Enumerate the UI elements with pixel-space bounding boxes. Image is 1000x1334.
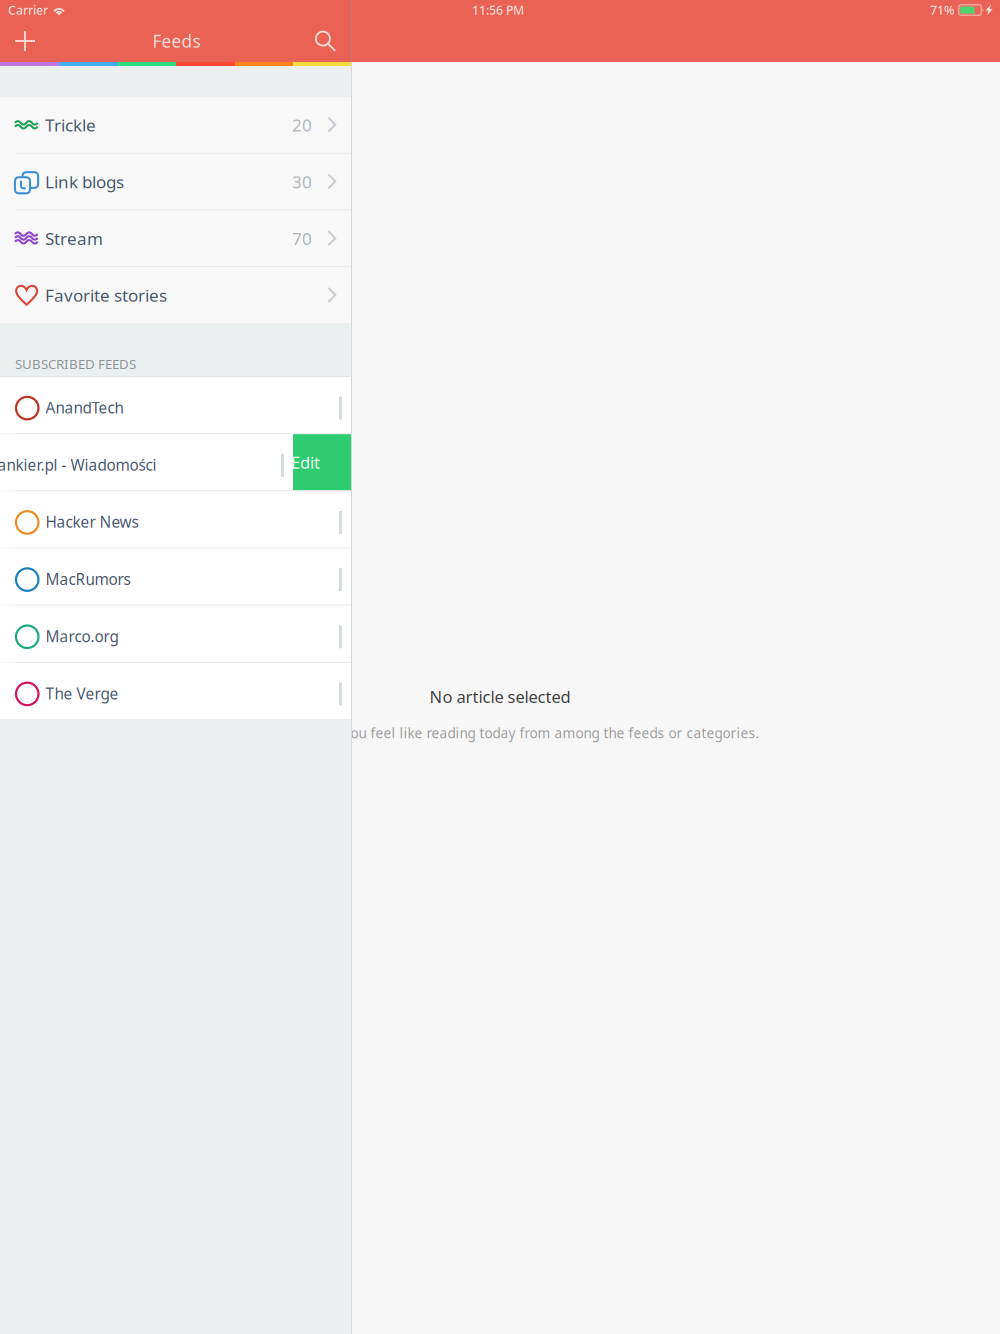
button[interactable]: Link blogs (0, 154, 351, 210)
button[interactable]: Marco.org (0, 606, 351, 662)
button[interactable]: Hacker News (0, 491, 351, 547)
button[interactable]: MacRumors (0, 548, 351, 605)
staticText: Stream (45, 227, 103, 250)
button[interactable]: Bankier.pl - Wiadomości (0, 434, 351, 490)
staticText: 71% (930, 2, 954, 18)
staticText: Favorite stories (45, 283, 167, 307)
staticText: Link blogs (45, 170, 124, 193)
staticText: 11:56 PM (472, 2, 524, 18)
staticText: Hacker News (45, 511, 138, 532)
button[interactable]: Search (303, 20, 351, 62)
button[interactable]: Stream (0, 210, 351, 266)
staticText: Bankier.pl - Wiadomości (0, 454, 156, 475)
staticText: AnandTech (45, 397, 123, 418)
button[interactable]: Add feed (0, 20, 50, 62)
button[interactable]: Edit (293, 434, 351, 490)
staticText: 20 (292, 113, 312, 136)
staticText: MacRumors (45, 569, 130, 590)
staticText: 70 (292, 227, 312, 250)
staticText: 30 (292, 170, 312, 193)
staticText: The Verge (45, 683, 118, 704)
staticText: Edit (291, 451, 320, 473)
button[interactable]: Favorite stories (0, 267, 351, 323)
button[interactable]: Trickle (0, 97, 351, 153)
staticText: Pick something you feel like reading tod… (240, 724, 759, 742)
staticText: No article selected (429, 685, 570, 708)
staticText: SUBSCRIBED FEEDS (15, 355, 136, 373)
staticText: Marco.org (45, 626, 118, 647)
staticText: Carrier (8, 2, 48, 18)
button[interactable]: AnandTech (0, 377, 351, 433)
staticText: Feeds (152, 29, 200, 53)
staticText: Trickle (45, 113, 96, 136)
button[interactable]: The Verge (0, 663, 351, 719)
